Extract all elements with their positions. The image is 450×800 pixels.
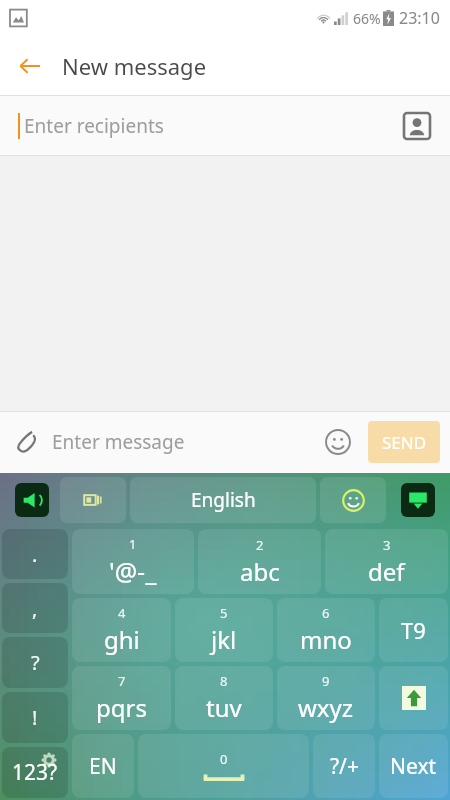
button[interactable]: Emoji — [318, 422, 358, 462]
staticText: 5 — [220, 604, 228, 622]
button[interactable]: Attach — [6, 421, 48, 463]
button[interactable]: Space — [138, 734, 309, 798]
staticText: def — [368, 555, 405, 588]
staticText: abc — [240, 555, 280, 588]
button[interactable]: 1 — [72, 529, 194, 594]
staticText: wxyz — [298, 691, 354, 724]
staticText: , — [32, 595, 38, 622]
button[interactable]: 123? — [2, 747, 68, 798]
staticText: ?/+ — [330, 752, 359, 781]
staticText: 7 — [118, 672, 126, 690]
staticText: Enter message — [52, 429, 185, 455]
button[interactable]: 8 — [175, 666, 273, 730]
button[interactable]: Emoji — [320, 477, 386, 523]
staticText: 2 — [256, 536, 264, 554]
staticText: ? — [31, 649, 40, 676]
button[interactable]: Back — [8, 44, 52, 88]
button[interactable]: T9 — [379, 598, 448, 662]
button[interactable]: Next — [379, 734, 448, 798]
button[interactable]: , — [2, 583, 68, 633]
button[interactable]: . — [2, 529, 68, 579]
button[interactable]: ?/+ — [313, 734, 375, 798]
button[interactable]: Voice input — [4, 477, 60, 523]
staticText: '@-_ — [109, 554, 157, 588]
button[interactable]: 6 — [277, 598, 375, 662]
button[interactable]: ! — [2, 692, 68, 743]
staticText: Next — [390, 752, 437, 781]
button[interactable]: 2 — [198, 529, 321, 594]
staticText: T9 — [401, 615, 426, 645]
staticText: jkl — [211, 623, 237, 656]
staticText: 1 — [129, 535, 137, 553]
staticText: 4 — [118, 604, 126, 622]
button[interactable]: Hide keyboard — [390, 477, 446, 523]
button[interactable]: 3 — [325, 529, 448, 594]
staticText: 66% — [353, 9, 381, 28]
button[interactable]: 4 — [72, 598, 171, 662]
staticText: tuv — [206, 691, 242, 724]
staticText: mno — [300, 623, 352, 656]
staticText: 123? — [12, 758, 58, 787]
button[interactable]: ? — [2, 637, 68, 688]
staticText: EN — [89, 752, 117, 781]
staticText: English — [191, 487, 256, 513]
button[interactable]: EN — [72, 734, 134, 798]
button[interactable]: Add contact — [396, 105, 438, 147]
staticText: . — [32, 541, 38, 568]
button[interactable]: 7 — [72, 666, 171, 730]
button[interactable]: 5 — [175, 598, 273, 662]
staticText: 8 — [220, 672, 228, 690]
staticText: ghi — [104, 623, 140, 656]
staticText: Enter recipients — [24, 113, 164, 139]
staticText: 6 — [322, 604, 330, 622]
button[interactable]: SEND — [368, 421, 440, 463]
staticText: 23:10 — [399, 7, 440, 29]
button[interactable]: Shift — [379, 666, 448, 730]
button[interactable]: English — [130, 477, 316, 523]
staticText: SEND — [382, 431, 427, 454]
staticText: New message — [62, 51, 207, 81]
staticText: 0 — [220, 750, 228, 768]
staticText: 9 — [322, 672, 330, 690]
staticText: ! — [32, 704, 38, 731]
button[interactable]: Clipboard — [60, 477, 126, 523]
staticText: pqrs — [96, 691, 147, 724]
button[interactable]: 9 — [277, 666, 375, 730]
staticText: 3 — [383, 536, 391, 554]
